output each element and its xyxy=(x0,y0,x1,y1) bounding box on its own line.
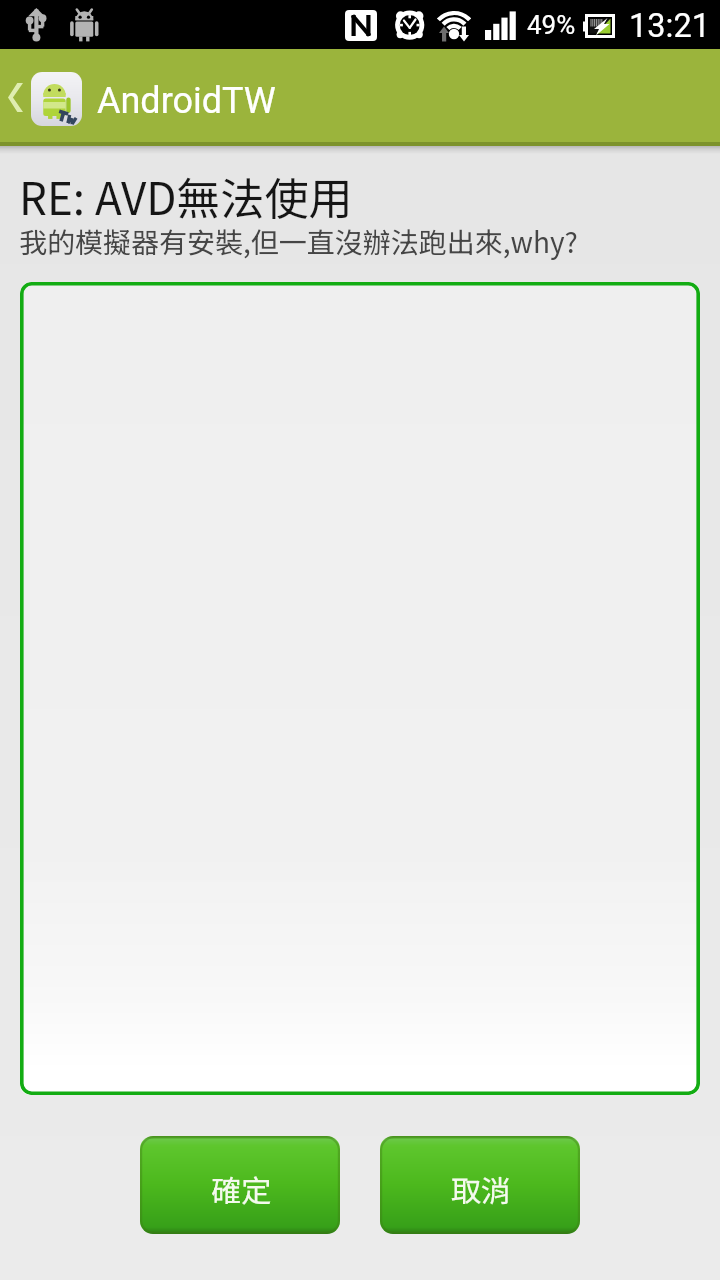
staticText: RE: AVD無法使用 xyxy=(19,164,353,228)
staticText: 確定 xyxy=(211,1167,271,1210)
staticText: AndroidTW xyxy=(97,80,276,122)
button[interactable]: Back xyxy=(0,49,31,146)
staticText: 取消 xyxy=(451,1167,511,1210)
button[interactable]: 取消 xyxy=(380,1136,580,1234)
staticText: 我的模擬器有安裝,但一直沒辦法跑出來,why? xyxy=(19,221,578,262)
staticText: 13:21 xyxy=(629,7,710,45)
button[interactable]: 確定 xyxy=(140,1136,340,1234)
staticText: 49% xyxy=(527,10,576,40)
button[interactable] xyxy=(20,282,700,1095)
